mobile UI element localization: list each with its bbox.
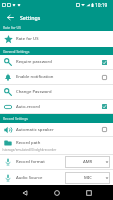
staticText: Require password [16, 59, 52, 65]
button[interactable]: Record format [0, 155, 113, 169]
button[interactable]: Toggle Require password [95, 55, 113, 69]
button[interactable]: Change Password [0, 85, 113, 99]
staticText: Rate for US [3, 25, 21, 30]
staticText: Change Password [16, 89, 52, 95]
button[interactable]: Require password [0, 55, 113, 69]
staticText: /storage/emulated/0/vdghkrecorder [2, 148, 57, 152]
staticText: Automatic speaker [16, 127, 54, 133]
staticText: Record path [16, 140, 41, 146]
button[interactable]: Auto-record [0, 100, 113, 113]
button[interactable]: Toggle Auto-record [95, 100, 113, 113]
button[interactable]: Back [17, 185, 32, 200]
button[interactable]: Recents [81, 185, 96, 200]
button[interactable]: Record path [0, 137, 113, 155]
button[interactable]: MIC [65, 172, 110, 184]
button[interactable]: Toggle Automatic speaker [95, 123, 113, 136]
button[interactable]: Enable notification [0, 70, 113, 84]
staticText: Record Settings [3, 116, 28, 121]
staticText: Rate for US [16, 36, 39, 42]
button[interactable]: Home [49, 185, 64, 200]
staticText: 10:19 [95, 2, 108, 9]
button[interactable]: Toggle Enable notification [95, 70, 113, 84]
staticText: Record format [16, 159, 45, 165]
button[interactable]: Rate for US [0, 31, 113, 47]
staticText: Auto-record [16, 104, 40, 110]
button[interactable]: AMR [65, 156, 110, 168]
staticText: Settings [20, 14, 41, 21]
staticText: General Settings [3, 49, 30, 54]
button[interactable]: Back [0, 10, 20, 24]
staticText: MIC [84, 175, 92, 181]
staticText: AMR [83, 159, 93, 165]
button[interactable]: Automatic speaker [0, 123, 113, 136]
button[interactable]: Audio Source [0, 170, 113, 185]
staticText: Enable notification [16, 74, 54, 80]
staticText: Audio Source [16, 175, 43, 181]
